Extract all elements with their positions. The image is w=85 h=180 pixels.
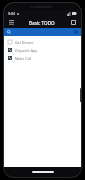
staticText: Get Dinner [15,40,34,45]
staticText: Make Call [15,56,32,61]
button[interactable]: More options [69,18,78,27]
staticText: 9:04 [8,11,15,16]
staticText: Basic TODO [29,20,55,26]
staticText: Dispatch App [15,48,38,53]
button[interactable]: Get Dinner [4,38,81,46]
button[interactable]: Search [4,28,81,36]
button[interactable]: Dispatch App [4,46,81,54]
button[interactable]: Make Call [4,54,81,62]
button[interactable]: Menu [7,18,16,27]
